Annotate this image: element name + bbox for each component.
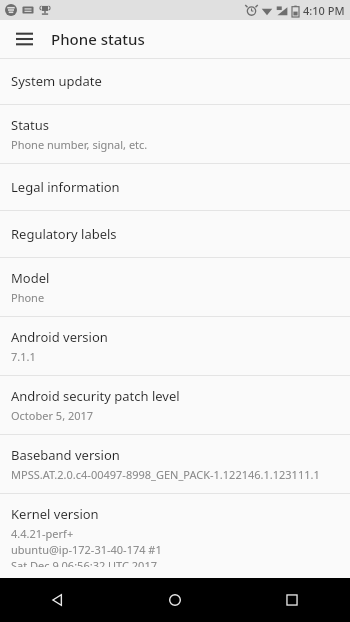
staticText: 4:10 PM <box>303 3 345 18</box>
staticText: Sat Dec 9 06:56:32 UTC 2017 <box>11 558 157 567</box>
staticText: Status <box>11 116 50 134</box>
staticText: 4.4.21-perf+ <box>11 526 74 541</box>
staticText: October 5, 2017 <box>11 408 94 423</box>
button[interactable]: Model <box>0 258 350 316</box>
button[interactable]: Status <box>0 105 350 163</box>
button[interactable]: Recent apps <box>233 578 350 622</box>
staticText: Model <box>11 269 50 287</box>
staticText: Phone status <box>51 29 145 49</box>
button[interactable]: Regulatory labels <box>0 211 350 257</box>
staticText: Baseband version <box>11 446 120 464</box>
staticText: ubuntu@ip-172-31-40-174 #1 <box>11 542 162 557</box>
button[interactable]: Home <box>116 578 233 622</box>
staticText: System update <box>11 72 102 90</box>
button[interactable]: Open navigation menu <box>6 21 42 57</box>
staticText: Android version <box>11 328 108 346</box>
staticText: 7.1.1 <box>11 349 36 364</box>
staticText: Regulatory labels <box>11 225 117 243</box>
button[interactable]: Android security patch level <box>0 376 350 434</box>
staticText: MPSS.AT.2.0.c4-00497-8998_GEN_PACK-1.122… <box>11 467 320 482</box>
staticText: Legal information <box>11 178 120 196</box>
button[interactable]: Legal information <box>0 164 350 210</box>
button[interactable]: System update <box>0 59 350 104</box>
button[interactable]: Kernel version <box>0 494 350 578</box>
staticText: Phone number, signal, etc. <box>11 137 148 152</box>
button[interactable]: Android version <box>0 317 350 375</box>
staticText: Android security patch level <box>11 387 180 405</box>
button[interactable]: Baseband version <box>0 435 350 493</box>
staticText: Phone <box>11 290 45 305</box>
staticText: Kernel version <box>11 505 99 523</box>
button[interactable]: Back <box>0 578 116 622</box>
